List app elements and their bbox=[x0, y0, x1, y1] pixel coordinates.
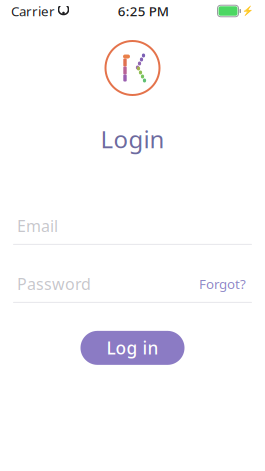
staticText: ⚡ bbox=[242, 6, 254, 16]
staticText: Password bbox=[17, 273, 91, 294]
staticText: Carrier bbox=[11, 2, 55, 20]
staticText: Forgot? bbox=[199, 275, 246, 293]
staticText: Login bbox=[100, 123, 164, 155]
staticText: Log in bbox=[106, 336, 158, 359]
staticText: Email bbox=[17, 215, 58, 236]
staticText: 6:25 PM bbox=[118, 2, 169, 20]
button[interactable]: Forgot? bbox=[197, 272, 248, 296]
button[interactable]: Log in bbox=[80, 331, 184, 365]
